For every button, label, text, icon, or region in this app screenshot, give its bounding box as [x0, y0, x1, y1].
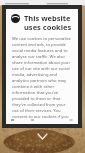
staticText: We use cookies to personalise content an…	[12, 36, 72, 120]
staticText: This website uses cookies	[24, 13, 73, 32]
other: Scroll down	[38, 134, 47, 139]
